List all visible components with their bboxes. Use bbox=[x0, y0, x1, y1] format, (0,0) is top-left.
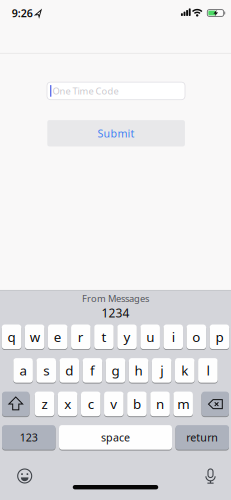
button[interactable]: r bbox=[71, 324, 91, 349]
staticText: v bbox=[110, 395, 117, 413]
button[interactable]: return bbox=[175, 425, 229, 450]
button[interactable]: q bbox=[2, 324, 21, 349]
staticText: 1234 bbox=[101, 305, 129, 321]
staticText: c bbox=[88, 395, 94, 413]
staticText: u bbox=[146, 328, 154, 346]
button[interactable]: o bbox=[187, 324, 206, 349]
button[interactable]: w bbox=[25, 324, 44, 349]
staticText: q bbox=[8, 328, 16, 346]
staticText: h bbox=[135, 361, 143, 379]
staticText: i bbox=[172, 328, 175, 346]
button[interactable]: v bbox=[104, 392, 124, 416]
staticText: space bbox=[101, 430, 130, 444]
staticText: z bbox=[41, 395, 47, 413]
button[interactable]: h bbox=[129, 358, 148, 383]
button[interactable]: u bbox=[140, 324, 160, 349]
button[interactable]: b bbox=[127, 392, 147, 416]
staticText: y bbox=[123, 328, 130, 346]
staticText: a bbox=[20, 361, 27, 379]
button[interactable]: 123 bbox=[2, 425, 55, 450]
button[interactable]: l bbox=[198, 358, 218, 383]
staticText: b bbox=[133, 395, 141, 413]
staticText: n bbox=[156, 395, 164, 413]
button[interactable]: z bbox=[35, 392, 54, 416]
staticText: k bbox=[181, 361, 188, 379]
button[interactable]: p bbox=[210, 324, 229, 349]
staticText: From Messages bbox=[82, 292, 149, 304]
staticText: return bbox=[186, 430, 218, 444]
button[interactable]: g bbox=[106, 358, 125, 383]
staticText: w bbox=[30, 328, 40, 346]
staticText: o bbox=[192, 328, 200, 346]
staticText: m bbox=[177, 395, 189, 413]
button[interactable]: x bbox=[58, 392, 77, 416]
button[interactable]: a bbox=[13, 358, 33, 383]
staticText: x bbox=[64, 395, 71, 413]
staticText: e bbox=[54, 328, 62, 346]
staticText: d bbox=[65, 361, 73, 379]
button[interactable]: y bbox=[117, 324, 137, 349]
button[interactable]: Submit bbox=[47, 120, 185, 146]
button[interactable]: Delete bbox=[201, 392, 229, 416]
staticText: f bbox=[90, 361, 95, 379]
button[interactable]: Shift bbox=[2, 392, 29, 416]
button[interactable]: j bbox=[152, 358, 171, 383]
button[interactable]: e bbox=[48, 324, 68, 349]
staticText: g bbox=[111, 361, 119, 379]
button[interactable]: c bbox=[81, 392, 101, 416]
button[interactable]: t bbox=[94, 324, 114, 349]
button[interactable]: f bbox=[83, 358, 102, 383]
button[interactable]: Emoji bbox=[17, 468, 33, 484]
staticText: p bbox=[215, 328, 223, 346]
staticText: 123 bbox=[20, 430, 38, 444]
button[interactable]: s bbox=[36, 358, 56, 383]
button[interactable]: From Messages bbox=[60, 291, 170, 322]
staticText: 9:26 bbox=[12, 6, 33, 20]
button[interactable]: k bbox=[175, 358, 195, 383]
staticText: s bbox=[43, 361, 49, 379]
button[interactable]: d bbox=[59, 358, 79, 383]
button[interactable]: n bbox=[150, 392, 170, 416]
button[interactable]: space bbox=[59, 425, 172, 450]
staticText: t bbox=[101, 328, 106, 346]
staticText: One Time Code bbox=[52, 85, 118, 97]
staticText: l bbox=[206, 361, 209, 379]
button[interactable]: m bbox=[173, 392, 193, 416]
staticText: Submit bbox=[98, 126, 135, 140]
staticText: r bbox=[78, 328, 84, 346]
staticText: j bbox=[160, 361, 163, 379]
button[interactable]: i bbox=[163, 324, 183, 349]
button[interactable]: Dictate bbox=[202, 468, 218, 484]
button[interactable]: One Time Code bbox=[47, 82, 185, 100]
